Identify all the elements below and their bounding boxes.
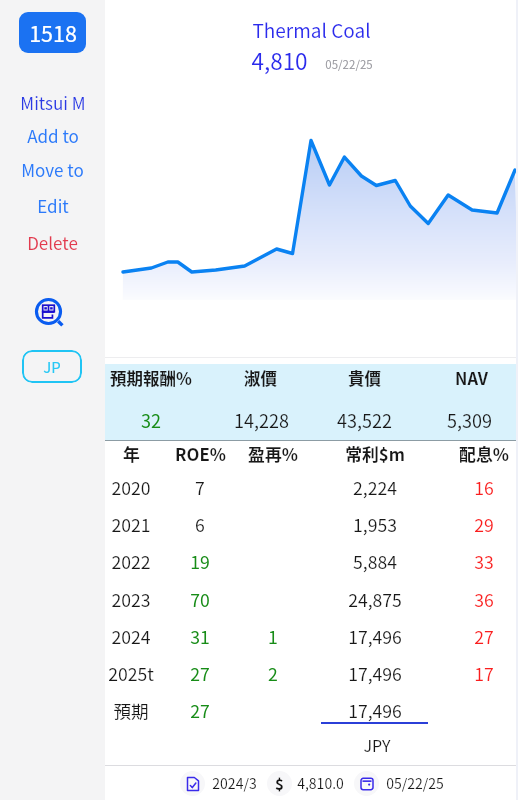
staticText: 2023 [111,587,151,612]
button[interactable]: Mitsui M [0,87,105,117]
staticText: 2021 [111,512,151,537]
staticText: 27 [190,661,210,686]
staticText: 32 [141,407,161,433]
button[interactable]: Move to [0,154,105,184]
staticText: 年 [123,442,140,466]
staticText: 2024/3 [212,773,257,793]
staticText: 70 [190,587,210,612]
staticText: 05/22/25 [386,773,444,793]
staticText: 17,496 [348,698,402,723]
staticText: Add to [27,123,79,148]
staticText: 5,884 [353,549,397,574]
button[interactable]: Edit [0,190,105,220]
button[interactable]: Date [354,771,379,796]
staticText: Mitsui M [20,90,86,115]
staticText: 2020 [111,475,151,500]
staticText: 預期 [113,698,149,723]
staticText: 配息% [459,442,509,466]
staticText: Edit [37,193,69,218]
staticText: 05/22/25 [325,56,373,73]
staticText: 4,810.0 [297,773,344,793]
staticText: 16 [474,475,494,500]
staticText: 常利$m [345,442,405,466]
button[interactable]: JP [22,350,82,383]
button[interactable]: 1518 [19,12,86,53]
staticText: 27 [190,698,210,723]
staticText: $ [275,773,284,795]
staticText: 36 [474,587,494,612]
staticText: 33 [474,549,494,574]
staticText: 2022 [111,549,151,574]
staticText: 7 [195,475,205,500]
staticText: 淑價 [244,366,277,390]
staticText: JP [43,356,61,378]
staticText: 43,522 [337,407,392,433]
staticText: 貴價 [348,366,381,390]
button[interactable]: Add to [0,120,105,150]
staticText: 17,496 [348,661,402,686]
staticText: 2025t [108,661,154,686]
staticText: 27 [474,624,494,649]
staticText: 17,496 [348,624,402,649]
staticText: 5,309 [447,407,492,433]
staticText: 2,224 [353,475,397,500]
staticText: 1,953 [353,512,397,537]
staticText: 17 [474,661,494,686]
staticText: 2 [268,661,278,686]
staticText: ROE% [175,442,226,466]
staticText: Thermal Coal [252,16,371,44]
staticText: 6 [195,512,205,537]
button[interactable]: Delete [0,227,105,257]
staticText: 預期報酬% [110,366,192,390]
staticText: NAV [455,366,488,390]
staticText: 盈再% [248,442,298,466]
staticText: 1 [268,624,278,649]
button[interactable]: Search stock [27,290,73,336]
staticText: 2024 [111,624,151,649]
staticText: 19 [190,549,210,574]
staticText: 14,228 [234,407,289,433]
staticText: 4,810 [251,44,308,77]
button[interactable]: Price [267,771,292,796]
staticText: 24,875 [348,587,402,612]
staticText: 1518 [29,17,77,48]
button[interactable]: Financial report [180,771,205,796]
staticText: 31 [190,624,210,649]
staticText: 29 [474,512,494,537]
staticText: Move to [21,157,84,182]
staticText: JPY [363,733,391,755]
staticText: Delete [27,230,78,255]
